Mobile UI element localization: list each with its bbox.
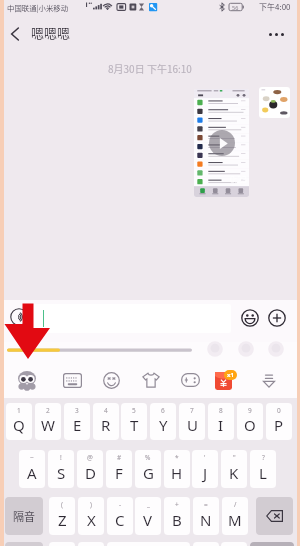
staticText: O (244, 415, 256, 435)
staticText: 1 (17, 406, 21, 415)
staticText: ) (90, 500, 92, 509)
button[interactable] (5, 542, 43, 546)
staticText: P (274, 415, 284, 435)
staticText: # (117, 453, 122, 462)
staticText: 2 (46, 406, 50, 415)
button[interactable]: Emoji (240, 308, 259, 327)
staticText: " (233, 453, 236, 462)
staticText: G (143, 463, 154, 483)
button[interactable] (78, 542, 104, 546)
staticText: B (172, 510, 182, 530)
staticText: 4 (104, 406, 108, 415)
staticText: 56 (232, 4, 239, 11)
staticText: R (101, 415, 111, 435)
button[interactable]: 1 (6, 403, 32, 440)
button[interactable]: Clothes (132, 362, 170, 398)
button[interactable] (193, 542, 219, 546)
button[interactable]: Back (0, 14, 29, 50)
staticText: H (171, 463, 183, 483)
staticText: % (145, 453, 151, 462)
staticText: 8 (219, 406, 223, 415)
staticText: 7 (190, 406, 194, 415)
button[interactable] (250, 542, 294, 546)
button[interactable]: 隔音 (5, 497, 43, 535)
staticText: L (259, 463, 267, 483)
button[interactable]: ! (48, 450, 74, 488)
button[interactable]: ( (49, 497, 75, 535)
button[interactable]: - (107, 497, 133, 535)
staticText: x1 (227, 371, 234, 379)
button[interactable]: 2 (35, 403, 61, 440)
button[interactable]: = (193, 497, 219, 535)
staticText: S (57, 463, 66, 483)
staticText: U (187, 415, 198, 435)
button[interactable]: Add (267, 308, 286, 327)
button[interactable] (49, 542, 75, 546)
button[interactable]: * (164, 450, 190, 488)
button[interactable]: " (221, 450, 247, 488)
button[interactable]: 4 (93, 403, 119, 440)
button[interactable]: 0 (266, 403, 292, 440)
button[interactable]: % (135, 450, 161, 488)
button[interactable] (221, 542, 247, 546)
button[interactable]: 7 (179, 403, 205, 440)
staticText: N (200, 510, 212, 530)
staticText: A (27, 463, 37, 483)
button[interactable]: 9 (237, 403, 263, 440)
staticText: Y (159, 415, 168, 435)
button[interactable]: # (106, 450, 132, 488)
staticText: 3 (75, 406, 79, 415)
staticText: 嗯嗯嗯 (31, 23, 71, 42)
staticText: I (218, 415, 224, 435)
button[interactable]: / (222, 497, 248, 535)
staticText: W (41, 415, 55, 435)
staticText: C (115, 510, 125, 530)
button[interactable]: @ (77, 450, 103, 488)
button[interactable]: ? (250, 450, 276, 488)
button[interactable]: + (164, 497, 190, 535)
button[interactable]: More options (253, 14, 300, 50)
button[interactable]: Smiley (92, 362, 130, 398)
button[interactable]: 5 (121, 403, 147, 440)
button[interactable]: ~ (19, 450, 45, 488)
button[interactable]: ' (192, 450, 218, 488)
staticText: 中国联通|小米移动 (7, 2, 69, 13)
staticText: ! (60, 453, 62, 462)
staticText: + (175, 500, 179, 509)
staticText: X (87, 510, 96, 530)
staticText: K (229, 463, 239, 483)
staticText: Q (13, 415, 25, 435)
button[interactable]: Backspace (256, 497, 293, 535)
staticText: / (234, 500, 237, 509)
staticText: E (73, 415, 82, 435)
staticText: 隔音 (13, 508, 35, 524)
button[interactable]: Red packet (207, 362, 245, 398)
button[interactable]: Games (171, 362, 209, 398)
button[interactable]: Stickers (8, 362, 46, 398)
staticText: 8月30日 下午16:10 (108, 61, 192, 75)
staticText: @ (87, 453, 93, 462)
button[interactable]: Image (259, 87, 290, 118)
staticText: 9 (248, 406, 252, 415)
staticText: = (204, 500, 208, 509)
button[interactable]: Play video (194, 89, 249, 197)
button[interactable]: More (250, 362, 288, 398)
button[interactable]: 8 (208, 403, 234, 440)
button[interactable]: 3 (64, 403, 90, 440)
button[interactable] (33, 304, 231, 333)
staticText: Z (58, 510, 67, 530)
staticText: ~ (30, 453, 34, 462)
staticText: 0:23 (230, 174, 247, 186)
staticText: _ (147, 500, 150, 509)
button[interactable]: Keyboard (53, 362, 91, 398)
button[interactable]: 6 (150, 403, 176, 440)
button[interactable]: _ (135, 497, 161, 535)
button[interactable]: ) (78, 497, 104, 535)
button[interactable]: Voice input (9, 307, 29, 327)
staticText: T (130, 415, 139, 435)
staticText: 5 (132, 406, 136, 415)
staticText: 下午4:00 (259, 1, 291, 13)
staticText: - (119, 500, 122, 509)
staticText: J (203, 463, 208, 483)
